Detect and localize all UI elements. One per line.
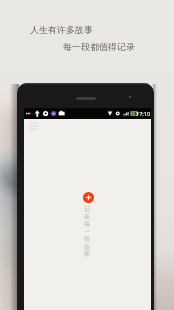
staticText: 17:10 [136, 110, 151, 117]
button[interactable]: Add [83, 192, 94, 203]
staticText: 人生有许多故事 [30, 24, 93, 35]
staticText: 故 [78, 243, 96, 251]
staticText: 记 [78, 205, 96, 213]
staticText: 每 [78, 220, 96, 228]
staticText: 事 [78, 250, 96, 258]
staticText: 每一段都值得记录 [63, 41, 135, 52]
staticText: 段 [78, 235, 96, 243]
button[interactable]: Menu [27, 119, 40, 132]
staticText: 一 [78, 228, 96, 236]
staticText: 录 [78, 213, 96, 221]
